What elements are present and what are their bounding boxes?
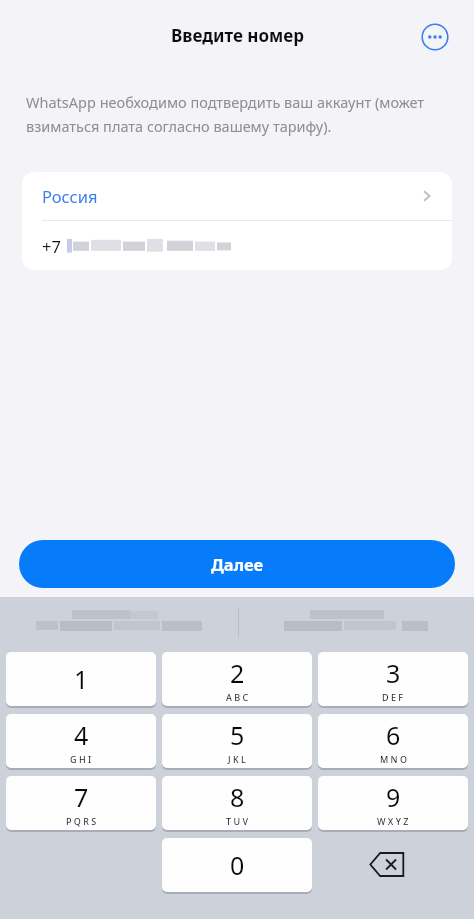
button[interactable]: 7 — [6, 776, 156, 832]
staticText: 8 — [230, 780, 245, 814]
staticText: D E F — [382, 691, 404, 703]
staticText: T U V — [226, 815, 248, 827]
button[interactable]: 8 — [162, 776, 312, 832]
staticText: G H I — [70, 753, 92, 765]
staticText: 1 — [74, 662, 89, 696]
button[interactable]: Дополнительно — [413, 15, 457, 59]
staticText: P Q R S — [66, 815, 97, 827]
button[interactable]: 9 — [318, 776, 468, 832]
staticText: WhatsApp необходимо подтвердить ваш акка… — [26, 92, 448, 136]
staticText: M N O — [380, 753, 407, 765]
button[interactable]: 4 — [6, 714, 156, 770]
staticText: 3 — [386, 656, 401, 690]
staticText: 0 — [230, 848, 245, 882]
button[interactable]: +7 — [22, 221, 452, 270]
staticText: +7 — [42, 235, 61, 257]
button[interactable]: 3 — [318, 652, 468, 708]
staticText: 9 — [386, 780, 401, 814]
button[interactable]: 5 — [162, 714, 312, 770]
button[interactable]: Россия — [22, 172, 452, 220]
button[interactable]: 2 — [162, 652, 312, 708]
staticText: Россия — [42, 185, 98, 207]
button[interactable]: Далее — [19, 540, 455, 588]
staticText: 4 — [74, 718, 89, 752]
staticText: 5 — [230, 718, 245, 752]
button[interactable]: Удалить — [318, 838, 468, 890]
staticText: Далее — [211, 553, 264, 575]
staticText: J K L — [228, 753, 246, 765]
button[interactable]: 1 — [6, 652, 156, 708]
staticText: A B C — [226, 691, 249, 703]
staticText: Введите номер — [171, 24, 304, 47]
staticText: W X Y Z — [377, 815, 409, 827]
staticText: 6 — [386, 718, 401, 752]
staticText: 7 — [74, 780, 89, 814]
staticText: 2 — [230, 656, 245, 690]
button[interactable]: 0 — [162, 838, 312, 894]
button[interactable]: 6 — [318, 714, 468, 770]
